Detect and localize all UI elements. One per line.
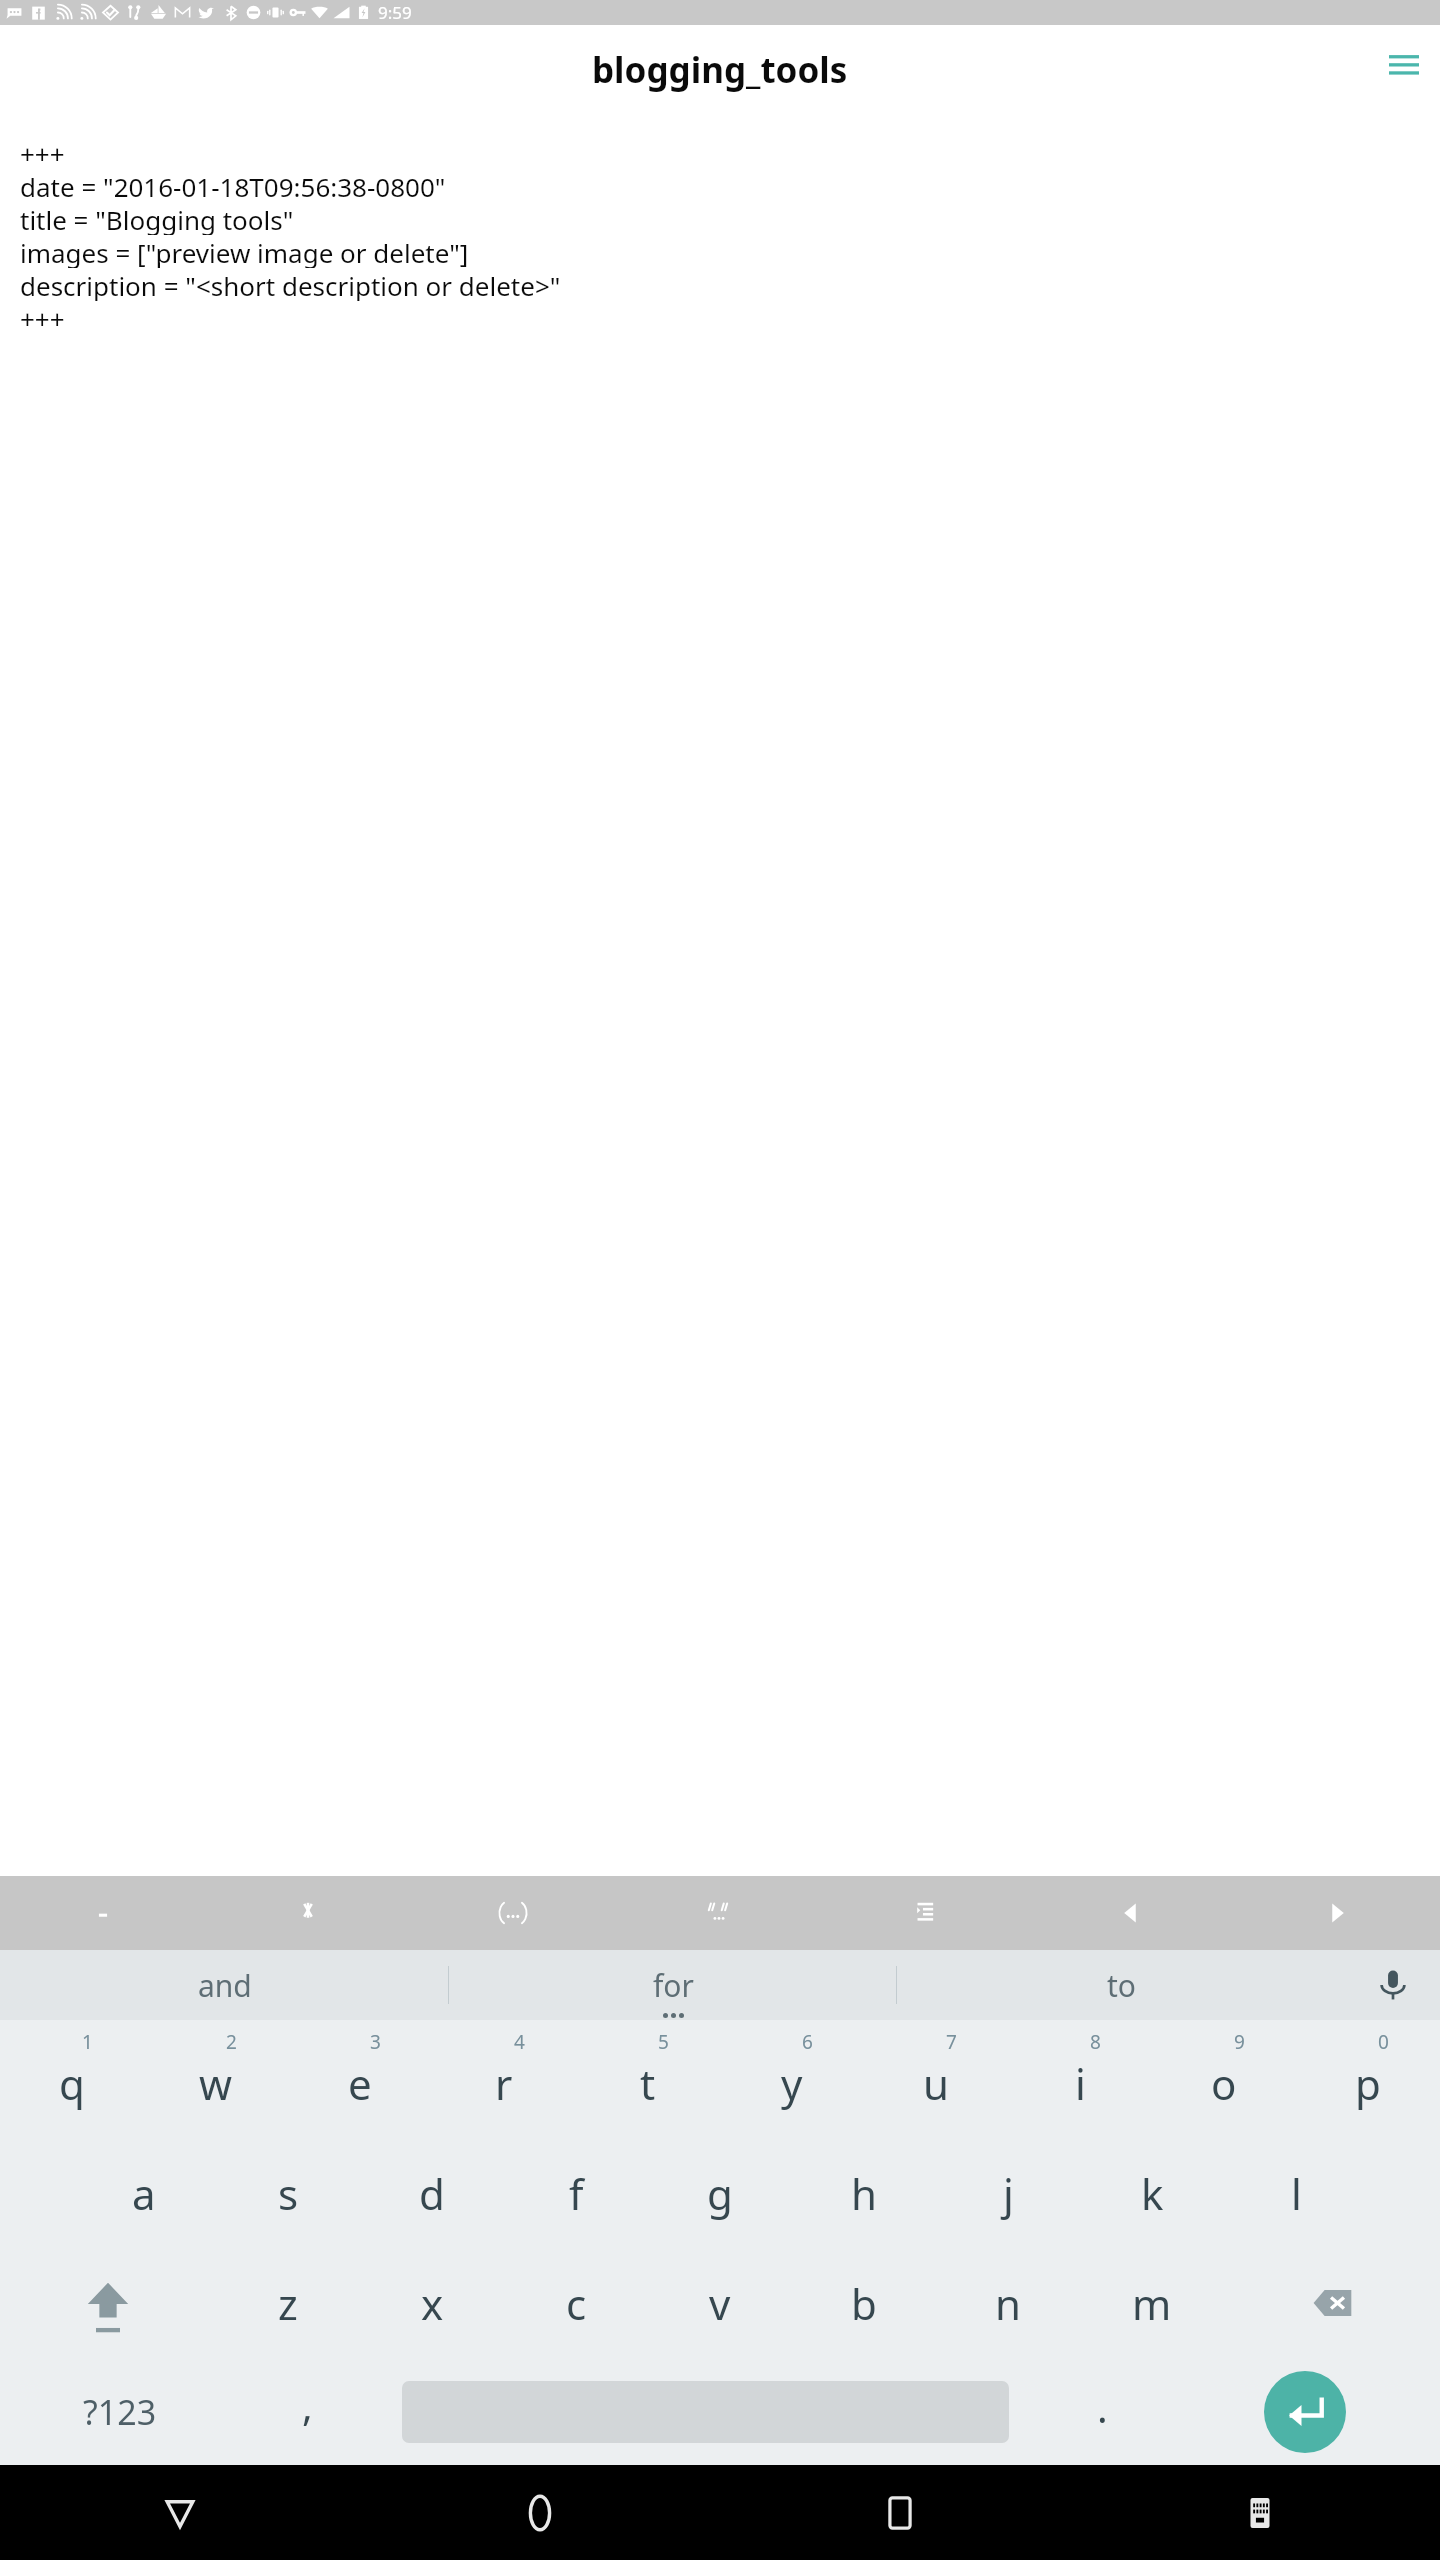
staticText: v	[709, 2275, 731, 2332]
staticText: 1	[82, 2029, 93, 2055]
staticText: s	[278, 2165, 299, 2222]
button[interactable]: Quotes	[616, 1876, 822, 1950]
staticText: 3	[370, 2029, 381, 2055]
button[interactable]: Backspace	[1224, 2248, 1440, 2358]
button[interactable]: 9	[1152, 2020, 1296, 2138]
button[interactable]: h	[792, 2138, 936, 2248]
button[interactable]: and	[0, 1950, 449, 2020]
staticText: 5	[658, 2029, 669, 2055]
button[interactable]: 8	[1008, 2020, 1152, 2138]
button[interactable]: v	[648, 2248, 792, 2358]
staticText: .	[1097, 2380, 1108, 2434]
button[interactable]: 6	[720, 2020, 864, 2138]
staticText: to	[1107, 1965, 1136, 2006]
button[interactable]: Menu	[1378, 39, 1430, 91]
button[interactable]: s	[216, 2138, 360, 2248]
staticText: 4	[514, 2029, 525, 2055]
button[interactable]: to	[897, 1950, 1345, 2020]
button[interactable]: Next	[1234, 1876, 1440, 1950]
staticText: description = "<short description or del…	[20, 268, 561, 301]
staticText: f	[569, 2165, 584, 2222]
button[interactable]: Asterisk	[205, 1876, 410, 1950]
staticText: m	[1132, 2275, 1172, 2332]
staticText: 2	[226, 2029, 237, 2055]
button[interactable]: Indent	[822, 1876, 1028, 1950]
button[interactable]: 3	[288, 2020, 432, 2138]
staticText: 0	[1378, 2029, 1389, 2055]
staticText: h	[851, 2165, 877, 2222]
button[interactable]: x	[360, 2248, 504, 2358]
staticText: 8	[1090, 2029, 1101, 2055]
staticText: y	[781, 2055, 803, 2112]
staticText: title = "Blogging tools"	[20, 202, 294, 235]
button[interactable]: 7	[864, 2020, 1008, 2138]
staticText: c	[566, 2275, 587, 2332]
staticText: e	[348, 2055, 372, 2112]
staticText: 9:59	[378, 1, 412, 24]
button[interactable]: d	[360, 2138, 504, 2248]
button[interactable]: g	[648, 2138, 792, 2248]
button[interactable]: Home	[360, 2465, 720, 2560]
staticText: ,	[302, 2378, 313, 2432]
staticText: r	[495, 2055, 513, 2112]
staticText: w	[199, 2055, 233, 2112]
staticText: z	[278, 2275, 298, 2332]
button[interactable]: ,	[240, 2358, 375, 2465]
button[interactable]: Parentheses	[410, 1876, 616, 1950]
staticText: g	[707, 2165, 733, 2222]
button[interactable]: m	[1080, 2248, 1224, 2358]
button[interactable]: .	[1035, 2358, 1170, 2465]
staticText: l	[1291, 2165, 1302, 2222]
button[interactable]: Previous	[1028, 1876, 1234, 1950]
staticText: p	[1355, 2055, 1381, 2112]
staticText: +++	[20, 136, 65, 169]
button[interactable]: f	[504, 2138, 648, 2248]
staticText: n	[995, 2275, 1021, 2332]
button[interactable]: a	[72, 2138, 216, 2248]
button[interactable]: Space	[375, 2358, 1035, 2465]
button[interactable]: ?123	[0, 2358, 240, 2465]
button[interactable]: Enter	[1170, 2358, 1440, 2465]
staticText: 7	[946, 2029, 957, 2055]
button[interactable]: c	[504, 2248, 648, 2358]
staticText: x	[421, 2275, 444, 2332]
button[interactable]: Recents	[720, 2465, 1080, 2560]
staticText: and	[198, 1965, 252, 2006]
button[interactable]: l	[1224, 2138, 1368, 2248]
button[interactable]: j	[936, 2138, 1080, 2248]
button[interactable]: 4	[432, 2020, 576, 2138]
button[interactable]: for	[449, 1950, 897, 2020]
button[interactable]: Voice input	[1345, 1950, 1440, 2020]
staticText: u	[923, 2055, 949, 2112]
button[interactable]: 5	[576, 2020, 720, 2138]
button[interactable]: 0	[1296, 2020, 1440, 2138]
staticText: k	[1141, 2165, 1164, 2222]
staticText: 6	[802, 2029, 813, 2055]
staticText: for	[653, 1965, 694, 2006]
staticText: b	[851, 2275, 877, 2332]
staticText: images = ["preview image or delete"]	[20, 235, 469, 268]
staticText: t	[640, 2055, 656, 2112]
staticText: i	[1075, 2055, 1086, 2112]
button[interactable]: 2	[144, 2020, 288, 2138]
button[interactable]: Shift	[0, 2248, 216, 2358]
staticText: blogging_tools	[592, 46, 848, 94]
button[interactable]: k	[1080, 2138, 1224, 2248]
button[interactable]: Switch keyboard	[1080, 2465, 1440, 2560]
button[interactable]: z	[216, 2248, 360, 2358]
staticText: j	[1003, 2165, 1014, 2222]
button[interactable]: b	[792, 2248, 936, 2358]
button[interactable]: 1	[0, 2020, 144, 2138]
staticText: a	[132, 2165, 156, 2222]
staticText: date = "2016-01-18T09:56:38-0800"	[20, 169, 446, 202]
staticText: d	[419, 2165, 445, 2222]
button[interactable]: n	[936, 2248, 1080, 2358]
button[interactable]: Back	[0, 2465, 360, 2560]
staticText: +++	[20, 301, 65, 334]
staticText: ?123	[83, 2389, 157, 2435]
staticText: q	[59, 2055, 85, 2112]
staticText: o	[1211, 2055, 1237, 2112]
staticText: 9	[1234, 2029, 1245, 2055]
